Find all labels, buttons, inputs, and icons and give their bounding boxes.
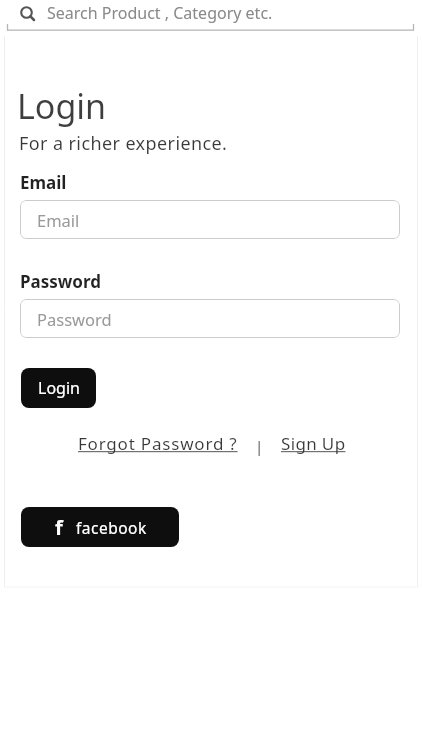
staticText: Login xyxy=(17,83,107,129)
button[interactable]: Password xyxy=(20,299,400,338)
staticText: Email xyxy=(20,171,67,194)
button[interactable]: f xyxy=(21,507,179,547)
button[interactable]: Forgot Password ? xyxy=(78,432,243,455)
button[interactable]: Login xyxy=(21,368,96,408)
staticText: | xyxy=(255,436,264,456)
button[interactable]: Search Product , Category etc. xyxy=(0,0,422,25)
staticText: facebook xyxy=(76,517,147,538)
staticText: For a richer experience. xyxy=(19,131,228,156)
button[interactable]: Email xyxy=(20,200,400,239)
button[interactable]: Sign Up xyxy=(281,432,346,455)
staticText: Password xyxy=(20,270,101,293)
staticText: Login xyxy=(38,377,80,399)
staticText: Password xyxy=(37,308,112,330)
staticText: f xyxy=(55,514,63,541)
staticText: Search Product , Category etc. xyxy=(47,2,273,24)
staticText: Email xyxy=(37,209,80,231)
